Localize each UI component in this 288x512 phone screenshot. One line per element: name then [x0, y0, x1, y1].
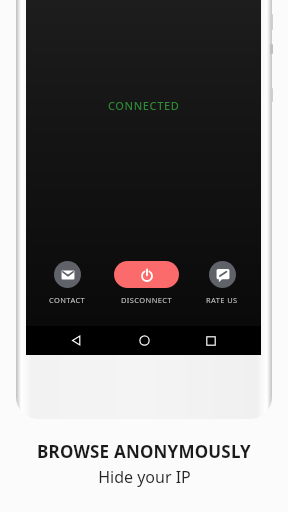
button[interactable]: Back	[59, 326, 93, 355]
staticText: BROWSE ANONYMOUSLY	[37, 440, 251, 463]
button[interactable]: Rate us	[202, 259, 242, 307]
button[interactable]: Home	[127, 326, 161, 355]
staticText: RATE US	[206, 295, 238, 305]
button[interactable]: Disconnect	[110, 259, 183, 307]
button[interactable]: Recents	[194, 326, 228, 355]
staticText: CONTACT	[49, 295, 86, 305]
staticText: Hide your IP	[98, 466, 191, 488]
staticText: CONNECTED	[108, 98, 180, 113]
button[interactable]: Contact	[45, 259, 90, 307]
staticText: DISCONNECT	[121, 295, 173, 305]
